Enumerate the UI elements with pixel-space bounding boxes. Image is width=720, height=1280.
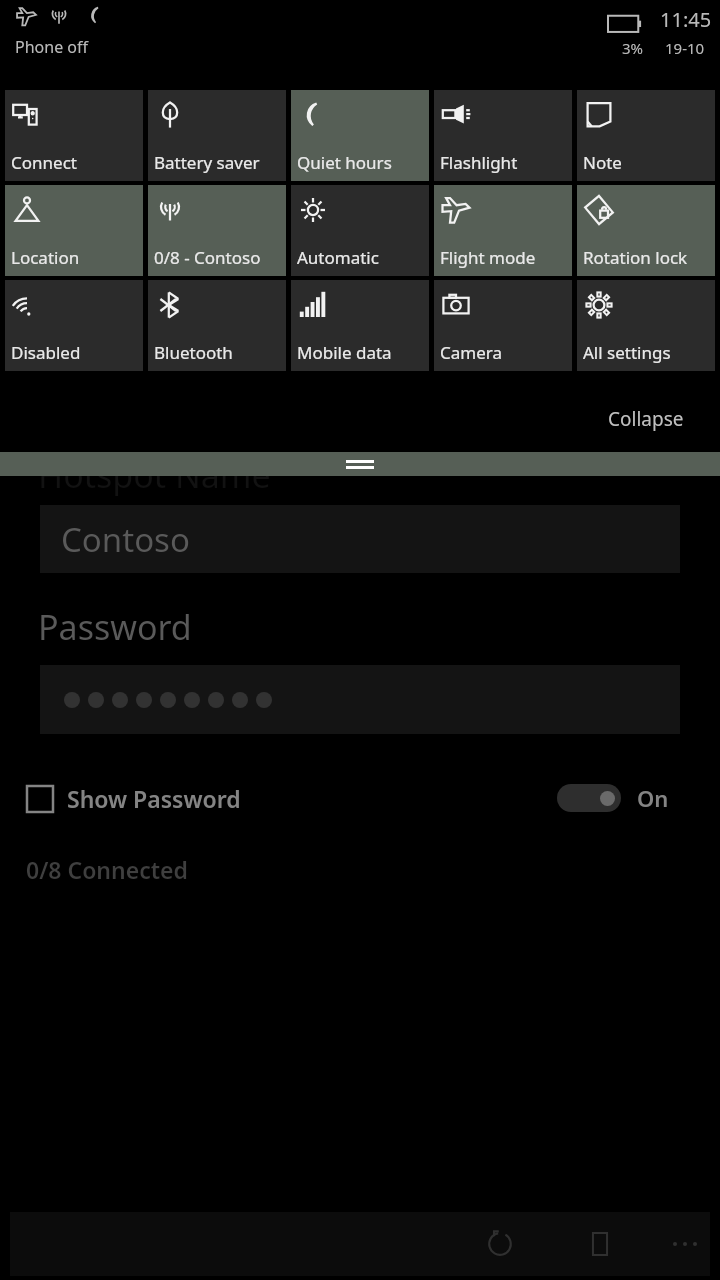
staticText: On xyxy=(637,783,669,813)
staticText: Phone off xyxy=(15,36,89,58)
button[interactable]: Battery saver xyxy=(148,90,286,181)
button[interactable]: Rotation lock xyxy=(577,185,715,276)
button[interactable]: Location xyxy=(5,185,143,276)
staticText: Hotspot Name xyxy=(38,452,271,498)
staticText: Rotation lock xyxy=(583,246,688,269)
button[interactable]: On xyxy=(551,777,675,819)
staticText: Collapse xyxy=(608,406,684,432)
button[interactable]: Flight mode xyxy=(434,185,572,276)
staticText: Contoso xyxy=(61,517,190,562)
button[interactable]: Collapse xyxy=(600,400,692,438)
button[interactable]: Start xyxy=(570,1214,630,1274)
button[interactable]: 0/8 - Contoso xyxy=(148,185,286,276)
button[interactable]: Automatic xyxy=(291,185,429,276)
staticText: 11:45 xyxy=(660,6,712,33)
staticText: All settings xyxy=(583,341,671,364)
staticText: Flight mode xyxy=(440,246,536,269)
staticText: 0/8 Connected xyxy=(26,854,188,885)
button[interactable]: Back xyxy=(470,1214,530,1274)
button[interactable]: Camera xyxy=(434,280,572,371)
button[interactable]: Drag handle xyxy=(0,452,720,476)
button[interactable]: Show Password xyxy=(0,783,251,814)
staticText: Connect xyxy=(11,151,77,174)
staticText: Disabled xyxy=(11,341,81,364)
staticText: Show Password xyxy=(67,783,241,814)
staticText: 0/8 - Contoso xyxy=(154,246,261,269)
staticText: Camera xyxy=(440,341,502,364)
button[interactable]: Connect xyxy=(5,90,143,181)
button[interactable]: Bluetooth xyxy=(148,280,286,371)
staticText: Quiet hours xyxy=(297,151,392,174)
button[interactable]: Note xyxy=(577,90,715,181)
staticText: Mobile data xyxy=(297,341,392,364)
button[interactable]: More xyxy=(655,1214,715,1274)
button[interactable]: Contoso xyxy=(40,505,680,573)
button[interactable]: All settings xyxy=(577,280,715,371)
staticText: Battery saver xyxy=(154,151,260,174)
staticText: Note xyxy=(583,151,622,174)
button[interactable]: Mobile data xyxy=(291,280,429,371)
staticText: Location xyxy=(11,246,80,269)
staticText: Password xyxy=(38,604,192,650)
staticText: Flashlight xyxy=(440,151,518,174)
button[interactable] xyxy=(40,665,680,734)
staticText: Bluetooth xyxy=(154,341,233,364)
staticText: 19-10 xyxy=(665,38,705,58)
button[interactable]: Flashlight xyxy=(434,90,572,181)
button[interactable]: Quiet hours xyxy=(291,90,429,181)
staticText: Automatic xyxy=(297,246,379,269)
button[interactable]: Disabled xyxy=(5,280,143,371)
staticText: 3% xyxy=(622,38,644,58)
